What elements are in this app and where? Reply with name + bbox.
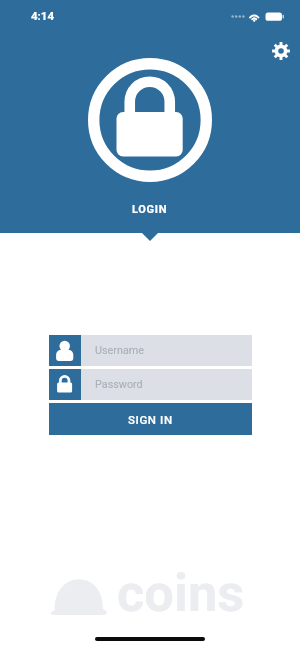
staticText: LOGIN <box>132 203 168 216</box>
staticText: 4:14 <box>31 9 55 22</box>
staticText: SIGN IN <box>128 413 173 426</box>
button[interactable]: Settings <box>264 34 298 68</box>
button[interactable]: SIGN IN <box>49 403 252 435</box>
staticText: Username <box>95 344 144 357</box>
staticText: Password <box>95 378 143 391</box>
button[interactable]: Username <box>49 335 252 366</box>
button[interactable]: Password <box>49 369 252 400</box>
staticText: coins <box>117 562 245 624</box>
